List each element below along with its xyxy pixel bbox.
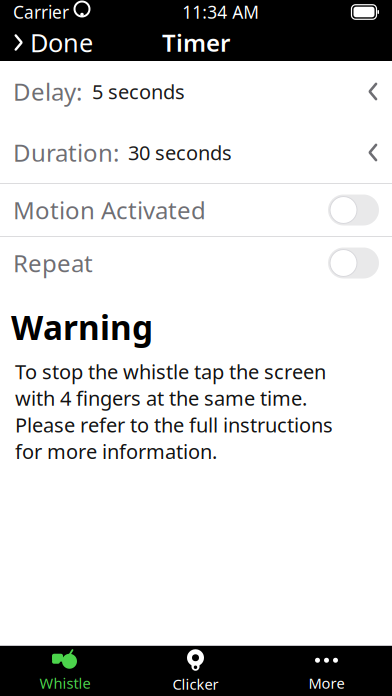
staticText: Clicker <box>172 674 218 694</box>
button[interactable]: Done <box>0 24 106 61</box>
button[interactable]: Whistle <box>0 646 130 696</box>
button[interactable]: Duration: <box>0 122 392 183</box>
button[interactable]: Delay: <box>0 61 392 122</box>
button[interactable]: Motion Activated <box>0 184 392 236</box>
staticText: Duration: <box>13 137 119 168</box>
staticText: 30 seconds <box>128 139 232 166</box>
staticText: Timer <box>162 27 230 58</box>
staticText: Done <box>30 26 93 59</box>
staticText: Whistle <box>39 673 90 693</box>
staticText: More <box>308 673 344 693</box>
staticText: Carrier <box>13 0 69 23</box>
button[interactable]: Repeat <box>0 237 392 289</box>
button[interactable]: Clicker <box>130 646 261 696</box>
staticText: Repeat <box>13 247 93 279</box>
staticText: To stop the whistle tap the screen with … <box>15 358 333 464</box>
staticText: Delay: <box>13 76 82 107</box>
staticText: 5 seconds <box>92 78 185 105</box>
staticText: 11:34 AM <box>182 0 259 23</box>
staticText: Motion Activated <box>13 194 206 226</box>
staticText: Warning <box>11 305 153 349</box>
button[interactable]: More <box>261 646 392 696</box>
